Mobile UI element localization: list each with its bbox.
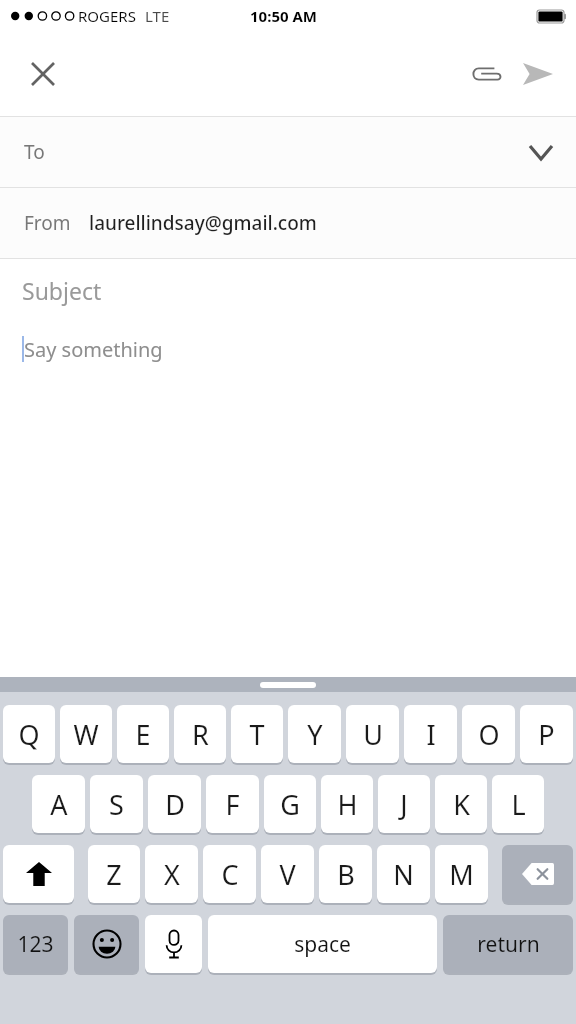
staticText: I xyxy=(426,716,436,753)
staticText: K xyxy=(453,786,470,823)
other: Backspace xyxy=(502,845,573,903)
staticText: C xyxy=(221,856,239,893)
button[interactable]: space xyxy=(208,915,437,973)
staticText: V xyxy=(279,856,296,893)
button[interactable]: return xyxy=(443,915,573,973)
button[interactable]: 123 xyxy=(3,915,68,973)
staticText: B xyxy=(337,856,355,893)
staticText: 123 xyxy=(17,930,54,959)
staticText: Q xyxy=(18,716,40,753)
button[interactable]: E xyxy=(117,705,169,763)
button[interactable]: F xyxy=(206,775,259,833)
button[interactable]: R xyxy=(174,705,226,763)
button[interactable]: To xyxy=(0,117,576,187)
button[interactable]: S xyxy=(90,775,143,833)
staticText: P xyxy=(538,716,555,753)
staticText: T xyxy=(249,716,265,753)
button[interactable]: P xyxy=(520,705,573,763)
button[interactable] xyxy=(74,915,139,973)
button[interactable] xyxy=(502,845,573,903)
staticText: Z xyxy=(106,856,122,893)
button[interactable]: A xyxy=(32,775,85,833)
button[interactable]: L xyxy=(492,775,544,833)
staticText: E xyxy=(135,716,151,753)
button[interactable]: Send xyxy=(512,48,564,100)
staticText: O xyxy=(478,716,500,753)
button[interactable]: Z xyxy=(88,845,140,903)
button[interactable]: Subject xyxy=(0,259,576,321)
staticText: X xyxy=(164,856,180,893)
button[interactable]: Attach file xyxy=(460,48,512,100)
button[interactable]: J xyxy=(378,775,430,833)
other: Dictate xyxy=(145,915,202,973)
staticText: J xyxy=(400,786,408,823)
button[interactable]: N xyxy=(377,845,430,903)
staticText: space xyxy=(294,930,351,959)
staticText: L xyxy=(511,786,526,823)
button[interactable]: Close xyxy=(18,49,68,99)
button[interactable]: M xyxy=(435,845,488,903)
staticText: S xyxy=(109,786,124,823)
other: Shift xyxy=(3,845,74,903)
staticText: return xyxy=(477,930,540,959)
button[interactable]: X xyxy=(145,845,198,903)
staticText: From xyxy=(24,210,71,236)
staticText: R xyxy=(192,716,209,753)
button[interactable]: K xyxy=(435,775,487,833)
button[interactable]: G xyxy=(264,775,316,833)
staticText: A xyxy=(50,786,68,823)
staticText: Subject xyxy=(22,275,102,306)
staticText: laurellindsay@gmail.com xyxy=(89,210,317,236)
staticText: LTE xyxy=(145,6,170,26)
button[interactable]: Q xyxy=(3,705,55,763)
staticText: W xyxy=(73,716,99,753)
staticText: D xyxy=(165,786,185,823)
button[interactable]: H xyxy=(321,775,373,833)
staticText: U xyxy=(363,716,383,753)
button[interactable]: C xyxy=(203,845,256,903)
button[interactable]: Keyboard handle xyxy=(260,682,316,688)
button[interactable]: Y xyxy=(288,705,341,763)
button[interactable]: T xyxy=(231,705,283,763)
button[interactable]: W xyxy=(60,705,112,763)
staticText: M xyxy=(449,856,474,893)
button[interactable]: O xyxy=(462,705,515,763)
staticText: H xyxy=(337,786,358,823)
button[interactable]: U xyxy=(346,705,399,763)
staticText: 10:50 AM xyxy=(250,6,317,26)
staticText: To xyxy=(24,139,45,165)
button[interactable]: From xyxy=(0,188,576,258)
staticText: ROGERS xyxy=(78,6,136,26)
button[interactable]: B xyxy=(319,845,372,903)
button[interactable]: Say something xyxy=(0,321,576,377)
button[interactable] xyxy=(3,845,74,903)
staticText: N xyxy=(393,856,414,893)
other: Emoji xyxy=(74,915,139,973)
staticText: Y xyxy=(307,716,323,753)
staticText: Say something xyxy=(24,336,163,363)
staticText: F xyxy=(225,786,240,823)
button[interactable]: D xyxy=(148,775,201,833)
staticText: G xyxy=(280,786,300,823)
button[interactable]: V xyxy=(261,845,314,903)
button[interactable] xyxy=(145,915,202,973)
button[interactable]: I xyxy=(404,705,457,763)
